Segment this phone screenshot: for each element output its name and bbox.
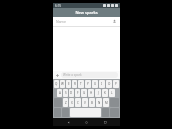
staticText: O bbox=[108, 82, 111, 86]
staticText: Z bbox=[65, 101, 67, 105]
button[interactable]: U bbox=[92, 80, 98, 88]
button[interactable]: N bbox=[96, 98, 102, 107]
staticText: Q bbox=[55, 82, 58, 86]
staticText: L bbox=[111, 91, 113, 95]
button[interactable]: Q bbox=[54, 80, 59, 88]
staticText: H bbox=[90, 91, 93, 95]
staticText: X bbox=[71, 101, 73, 105]
button[interactable]: X bbox=[69, 98, 74, 107]
button[interactable]: B bbox=[89, 98, 95, 107]
staticText: C bbox=[77, 101, 79, 105]
staticText: A bbox=[59, 91, 61, 95]
button[interactable]: W bbox=[60, 80, 65, 88]
button[interactable]: Name bbox=[56, 17, 117, 26]
staticText: F bbox=[77, 91, 79, 95]
staticText: J bbox=[98, 91, 99, 95]
button[interactable]: J bbox=[95, 89, 101, 97]
button[interactable]: R bbox=[72, 80, 77, 88]
staticText: P bbox=[115, 82, 117, 86]
button[interactable]: C bbox=[75, 98, 81, 107]
button[interactable]: Y bbox=[85, 80, 91, 88]
staticText: W bbox=[61, 82, 64, 86]
button[interactable]: O bbox=[106, 80, 112, 88]
button[interactable]: G bbox=[81, 89, 87, 97]
button[interactable]: Home bbox=[83, 119, 90, 126]
button[interactable]: D bbox=[69, 89, 74, 97]
staticText: K bbox=[104, 91, 106, 95]
button[interactable]: V bbox=[82, 98, 88, 107]
button[interactable]: E bbox=[66, 80, 71, 88]
staticText: Name bbox=[56, 19, 66, 24]
staticText: M bbox=[105, 101, 108, 105]
staticText: R bbox=[74, 82, 76, 86]
staticText: N bbox=[98, 101, 101, 105]
button[interactable]: Recents bbox=[102, 119, 109, 126]
button[interactable]: F bbox=[75, 89, 80, 97]
staticText: B bbox=[91, 101, 93, 105]
staticText: D bbox=[70, 91, 73, 95]
button[interactable]: A bbox=[57, 89, 62, 97]
staticText: G bbox=[83, 91, 86, 95]
staticText: V bbox=[84, 101, 86, 105]
staticText: 6:15 bbox=[55, 4, 61, 8]
button[interactable]: M bbox=[103, 98, 109, 107]
staticText: Y bbox=[87, 82, 89, 86]
button[interactable]: H bbox=[88, 89, 94, 97]
button[interactable]: L bbox=[109, 89, 115, 97]
button[interactable]: S bbox=[63, 89, 68, 97]
button[interactable]: T bbox=[78, 80, 84, 88]
button[interactable]: Attach bbox=[55, 73, 60, 78]
button[interactable]: Contacts bbox=[112, 19, 117, 24]
staticText: New sparks bbox=[75, 10, 98, 15]
staticText: Write a spark bbox=[63, 73, 82, 77]
button[interactable]: Write a spark bbox=[63, 72, 116, 78]
button[interactable]: K bbox=[102, 89, 108, 97]
button[interactable]: Z bbox=[63, 98, 68, 107]
button[interactable]: New sparks bbox=[53, 8, 120, 17]
button[interactable]: P bbox=[113, 80, 119, 88]
button[interactable]: I bbox=[99, 80, 105, 88]
staticText: U bbox=[94, 82, 97, 86]
button[interactable]: Back bbox=[65, 119, 72, 126]
staticText: S bbox=[65, 91, 67, 95]
staticText: E bbox=[68, 82, 70, 86]
staticText: T bbox=[80, 82, 82, 86]
staticText: I bbox=[101, 82, 103, 86]
